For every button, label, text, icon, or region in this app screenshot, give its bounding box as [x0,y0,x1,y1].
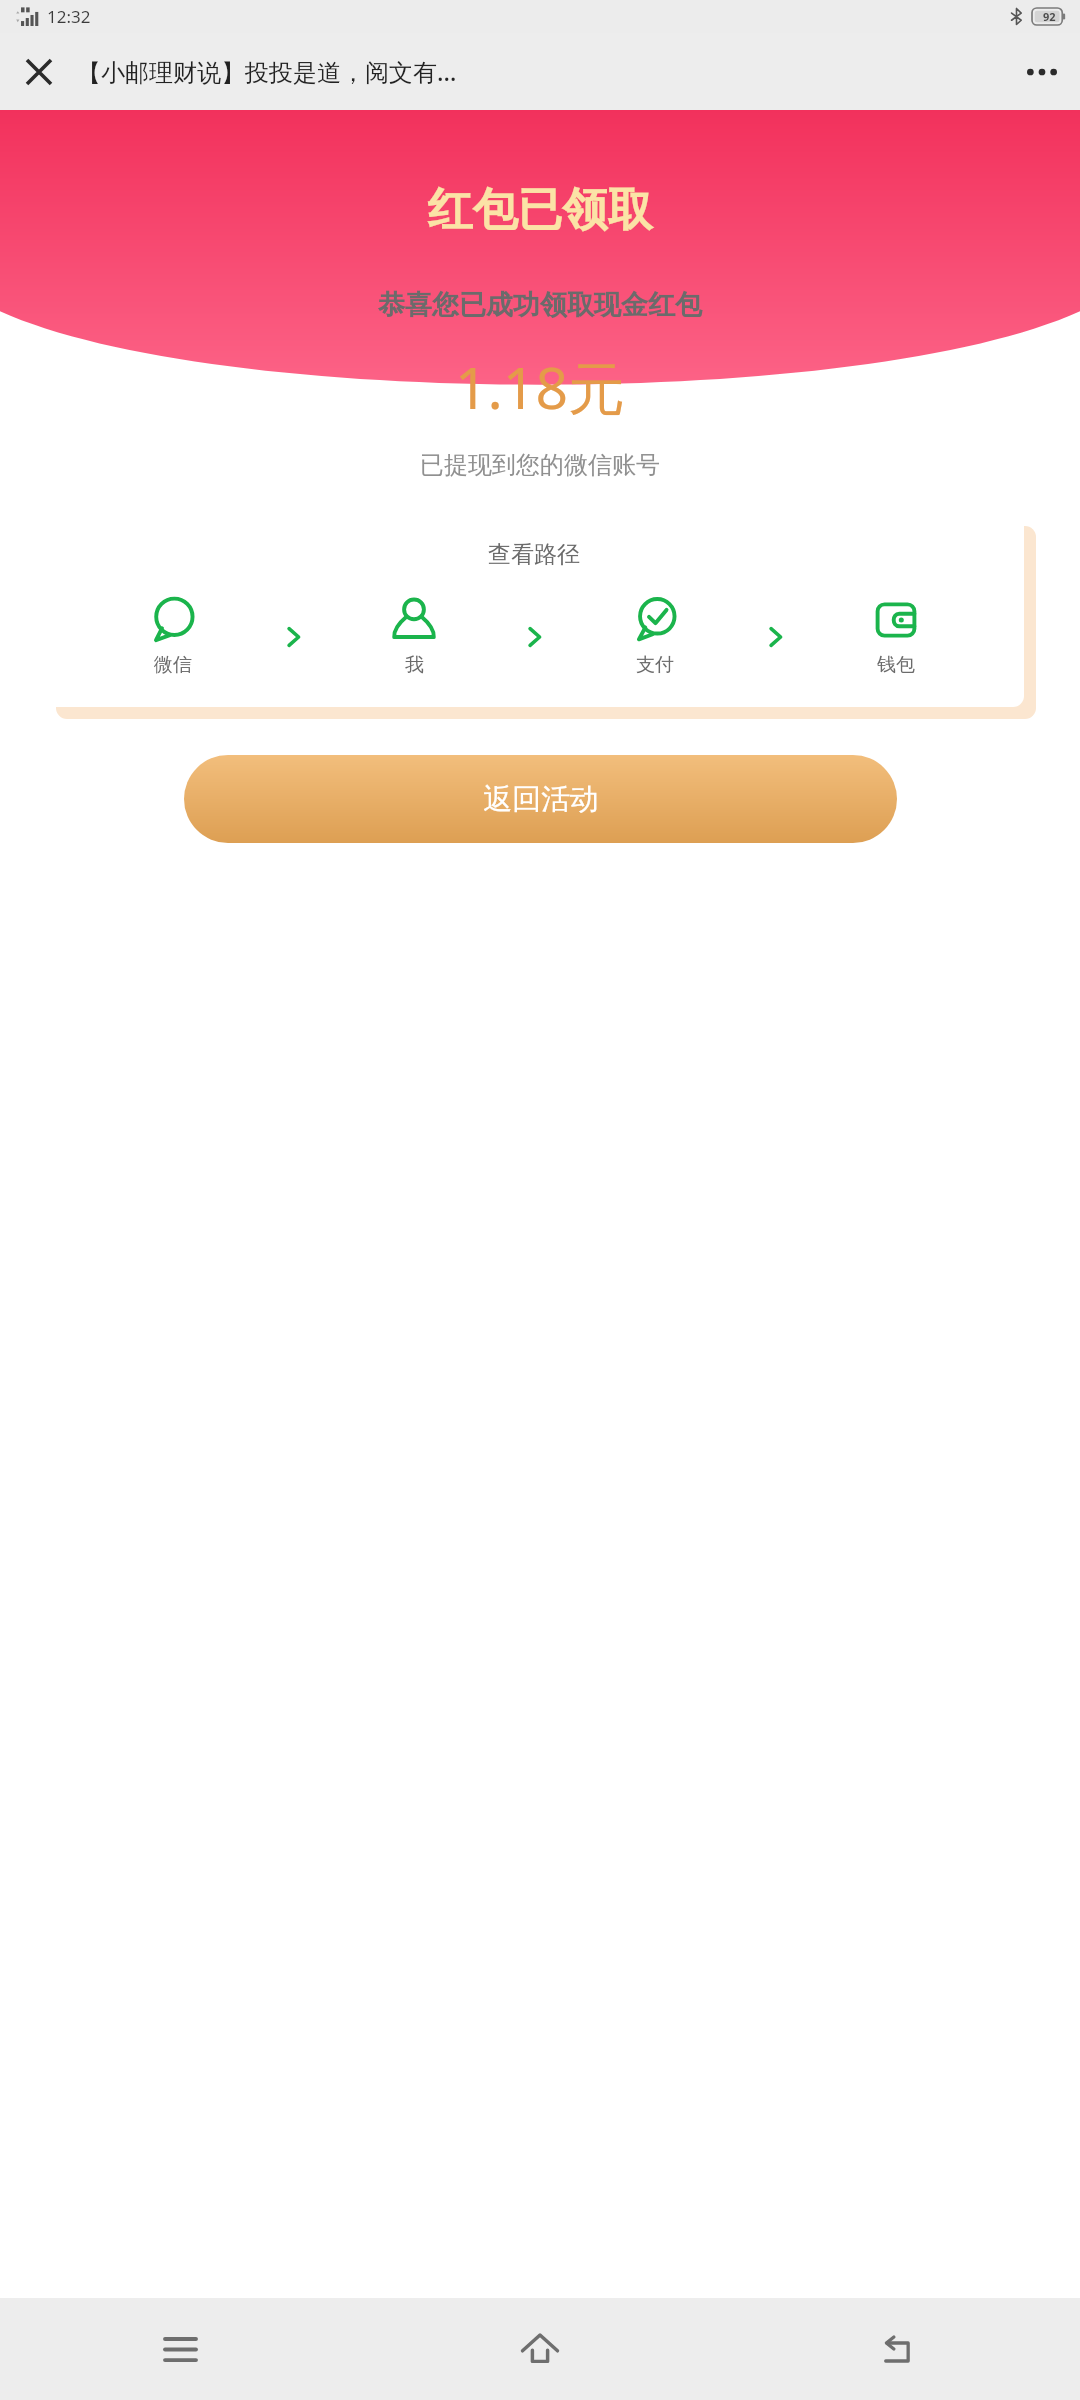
button[interactable]: Back [720,2298,1080,2400]
staticText: 【小邮理财说】投投是道，阅文有… [77,55,1003,88]
staticText: 我 [405,653,424,677]
staticText: 返回活动 [483,781,599,818]
staticText: 恭喜您已成功领取现金红包 [0,288,1080,322]
button[interactable]: Home [360,2298,720,2400]
staticText: 已提现到您的微信账号 [0,450,1080,480]
staticText: 钱包 [877,653,915,677]
staticText: 92 [1043,9,1056,24]
button[interactable]: Close [0,33,77,110]
staticText: 支付 [636,653,674,677]
button[interactable]: 查看路径 [44,514,1024,707]
staticText: 红包已领取 [0,182,1080,239]
button[interactable]: Recent apps [0,2298,360,2400]
staticText: 12:32 [47,5,91,28]
button[interactable]: 返回活动 [184,755,897,843]
staticText: 查看路径 [488,540,580,569]
staticText: 微信 [154,653,192,677]
staticText: 1.18元 [0,348,1080,426]
button[interactable]: More options [1003,33,1080,110]
